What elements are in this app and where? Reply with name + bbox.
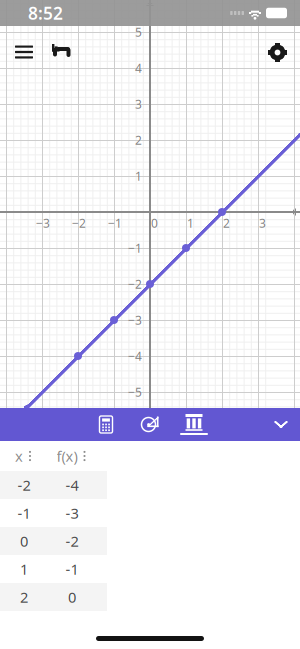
staticText: -3 [65,503,78,523]
staticText: −2 [72,215,86,231]
staticText: −2 [128,276,142,292]
button[interactable]: Geometry [128,408,172,441]
staticText: 2 [135,132,142,148]
staticText: 4 [135,60,142,76]
staticText: -1 [65,559,78,579]
staticText: 2 [223,215,230,231]
button[interactable]: Menu [14,45,34,59]
staticText: −5 [128,384,142,400]
staticText: −3 [36,215,50,231]
staticText: 1 [135,168,142,184]
staticText: 2 [20,587,28,607]
staticText: 0 [20,531,28,551]
staticText: x [15,446,23,466]
staticText: 0 [151,215,158,231]
staticText: −4 [128,348,142,364]
staticText: −1 [108,215,122,231]
staticText: f(x) [56,446,77,466]
button[interactable]: Collapse [262,408,300,441]
staticText: 0 [68,587,76,607]
button[interactable]: Table [172,408,216,441]
staticText: 1 [20,559,28,579]
staticText: -2 [65,531,78,551]
staticText: -2 [17,475,30,495]
button[interactable]: Undo [52,44,72,60]
staticText: −1 [128,240,142,256]
button[interactable]: x [0,441,48,471]
staticText: 1 [187,215,194,231]
button[interactable]: Settings [268,43,287,62]
staticText: 8:52 [28,1,63,24]
button[interactable]: Calculator [84,408,128,441]
staticText: -4 [65,475,78,495]
button[interactable]: f(x) [48,441,96,471]
staticText: 5 [135,24,142,40]
staticText: 3 [259,215,266,231]
staticText: −3 [128,312,142,328]
staticText: -1 [17,503,30,523]
staticText: 3 [135,96,142,112]
